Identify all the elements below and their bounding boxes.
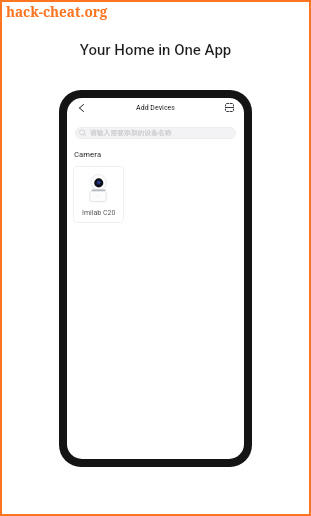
button[interactable]: Scan QR code — [222, 100, 236, 114]
staticText: hack-cheat.org — [6, 3, 108, 21]
button[interactable]: 请输入需要添加的设备名称 — [75, 127, 236, 139]
staticText: 请输入需要添加的设备名称 — [90, 128, 172, 137]
button[interactable]: Imilab C20 — [73, 166, 124, 223]
staticText: Your Home in One App — [0, 41, 311, 59]
staticText: Camera — [74, 150, 102, 159]
staticText: Imilab C20 — [82, 209, 116, 217]
button[interactable]: Back — [74, 101, 88, 115]
staticText: Add Devices — [67, 104, 244, 112]
